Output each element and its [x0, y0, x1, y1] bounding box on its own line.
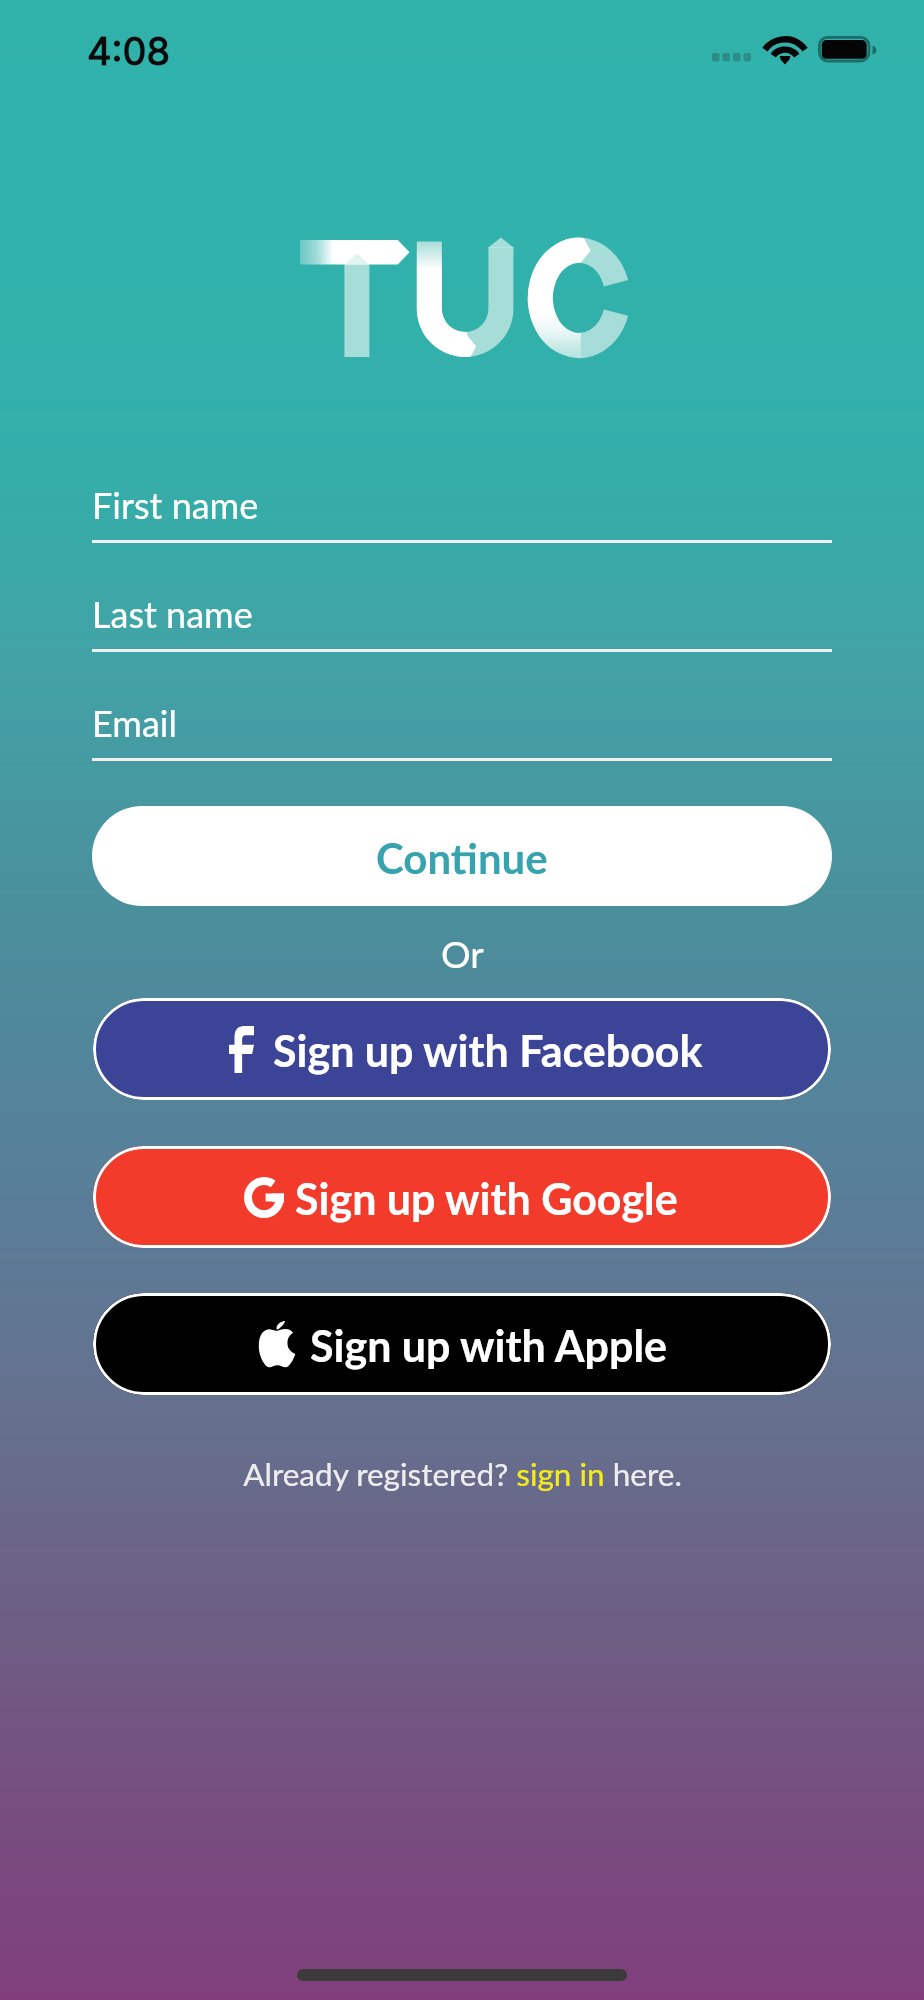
- staticText: Sign up with Google: [295, 1173, 678, 1225]
- button[interactable]: Already registered? sign in here.: [243, 1455, 682, 1493]
- button[interactable]: Email: [92, 687, 832, 761]
- staticText: Email: [92, 701, 177, 744]
- button[interactable]: Last name: [92, 578, 832, 652]
- button[interactable]: Sign up with Google: [93, 1146, 831, 1248]
- staticText: Sign up with Facebook: [273, 1025, 703, 1077]
- staticText: Sign up with Apple: [310, 1320, 668, 1372]
- button[interactable]: Continue: [92, 806, 832, 906]
- button[interactable]: Sign up with Apple: [93, 1293, 831, 1395]
- staticText: Continue: [376, 833, 548, 883]
- staticText: First name: [92, 483, 259, 526]
- button[interactable]: First name: [92, 469, 832, 543]
- staticText: Or: [441, 931, 484, 975]
- staticText: Last name: [92, 592, 253, 635]
- staticText: 4:08: [87, 28, 170, 74]
- button[interactable]: Sign up with Facebook: [93, 998, 831, 1100]
